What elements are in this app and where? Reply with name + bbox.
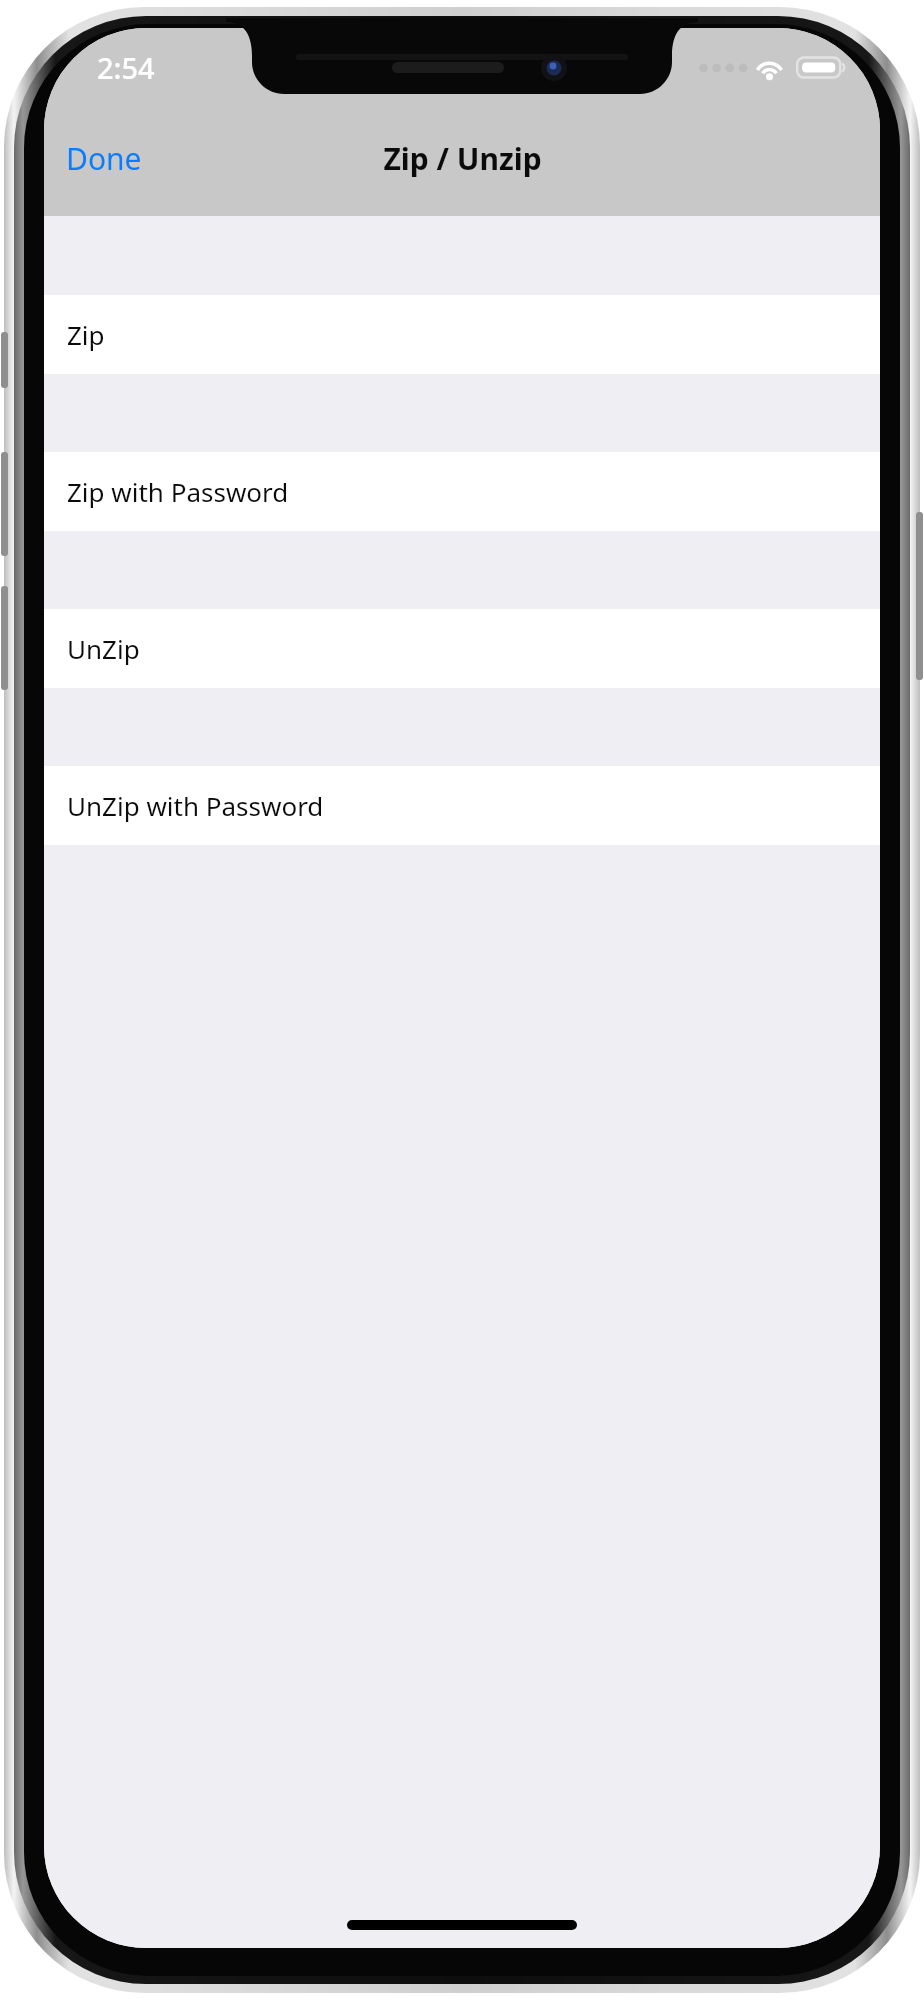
staticText: UnZip with Password	[67, 788, 324, 823]
staticText: Done	[66, 138, 142, 179]
staticText: 2:54	[97, 48, 155, 87]
button[interactable]: Zip	[44, 295, 880, 374]
staticText: UnZip	[67, 631, 140, 666]
staticText: Zip with Password	[67, 474, 289, 509]
button[interactable]: UnZip with Password	[44, 766, 880, 845]
button[interactable]: Zip with Password	[44, 452, 880, 531]
button[interactable]: UnZip	[44, 609, 880, 688]
other: Wi-Fi	[754, 55, 785, 80]
other: Battery full	[796, 55, 846, 80]
staticText: Zip	[67, 317, 105, 352]
other: Cellular signal	[699, 61, 745, 75]
staticText: Zip / Unzip	[383, 138, 542, 179]
button[interactable]: Done	[44, 100, 164, 216]
